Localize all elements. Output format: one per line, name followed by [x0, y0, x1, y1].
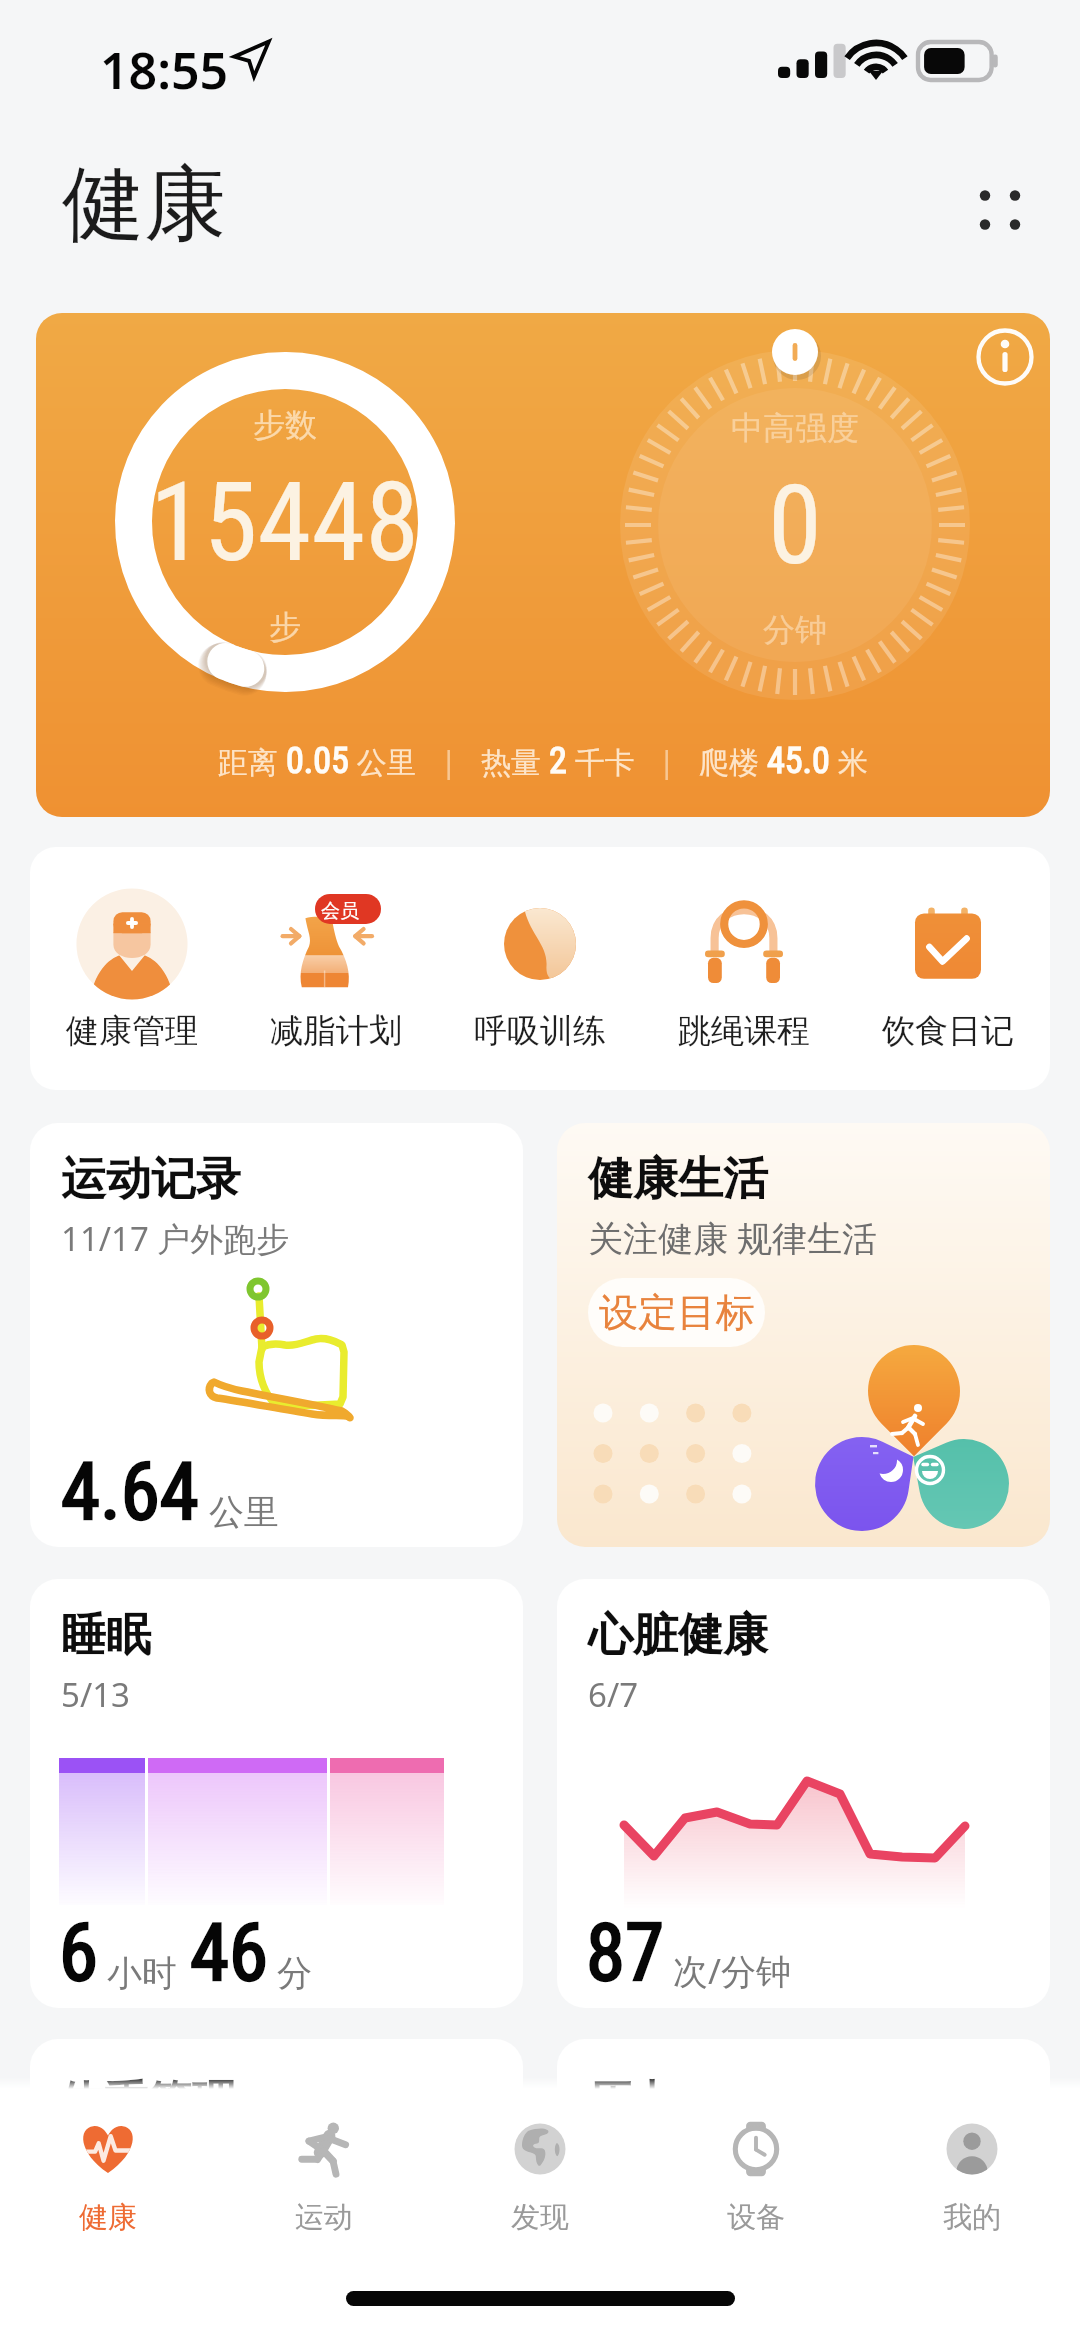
- staticText: 11/17 户外跑步: [61, 1216, 290, 1261]
- staticText: 6: [59, 1907, 98, 2000]
- staticText: 次/分钟: [673, 1947, 792, 1995]
- staticText: 分: [277, 1951, 312, 1995]
- button[interactable]: 发现: [432, 2089, 648, 2250]
- staticText: 分钟: [763, 610, 827, 650]
- staticText: 发现: [511, 2199, 569, 2236]
- staticText: 18:55: [100, 36, 229, 104]
- staticText: 2: [549, 740, 567, 782]
- staticText: 会员: [321, 899, 359, 923]
- staticText: 健康: [79, 2199, 137, 2236]
- staticText: 睡眠: [61, 1607, 151, 1664]
- staticText: 45.0: [767, 740, 830, 782]
- staticText: 爬楼: [699, 741, 767, 782]
- staticText: 15448: [150, 459, 420, 587]
- button[interactable]: 饮食日记: [846, 847, 1050, 1090]
- staticText: 距离: [218, 741, 286, 782]
- button[interactable]: 会员: [234, 847, 438, 1090]
- staticText: 0: [768, 462, 822, 590]
- button[interactable]: Info: [978, 330, 1032, 384]
- staticText: 跳绳课程: [678, 1010, 810, 1052]
- button[interactable]: 设定目标: [588, 1278, 765, 1347]
- staticText: 步数: [253, 405, 317, 445]
- staticText: 饮食日记: [882, 1010, 1014, 1052]
- staticText: 46: [190, 1907, 268, 2000]
- staticText: 步: [269, 607, 301, 647]
- staticText: 中高强度: [731, 408, 859, 448]
- button[interactable]: 睡眠: [30, 1579, 523, 2008]
- staticText: 健康生活: [588, 1151, 768, 1208]
- button[interactable]: 呼吸训练: [438, 847, 642, 1090]
- staticText: 运动: [295, 2199, 353, 2236]
- button[interactable]: 运动: [216, 2089, 432, 2250]
- button[interactable]: 健康: [0, 2089, 216, 2250]
- staticText: 热量: [481, 741, 549, 782]
- staticText: 呼吸训练: [474, 1010, 606, 1052]
- staticText: 健康管理: [66, 1010, 198, 1052]
- staticText: 0.05: [286, 740, 349, 782]
- staticText: 4.64: [61, 1446, 199, 1539]
- button[interactable]: 健康管理: [30, 847, 234, 1090]
- staticText: 心脏健康: [588, 1607, 768, 1664]
- staticText: 关注健康 规律生活: [588, 1214, 878, 1262]
- button[interactable]: 我的: [864, 2089, 1080, 2250]
- button[interactable]: 跳绳课程: [642, 847, 846, 1090]
- staticText: |: [417, 741, 481, 782]
- staticText: 我的: [943, 2199, 1001, 2236]
- button[interactable]: 心脏健康: [557, 1579, 1050, 2008]
- staticText: 公里: [349, 741, 417, 782]
- staticText: 健康: [62, 153, 226, 256]
- staticText: 5/13: [61, 1672, 130, 1717]
- staticText: 千卡: [567, 741, 635, 782]
- staticText: 6/7: [588, 1672, 639, 1717]
- button[interactable]: 运动记录: [30, 1123, 523, 1547]
- button[interactable]: 设备: [648, 2089, 864, 2250]
- staticText: 减脂计划: [270, 1010, 402, 1052]
- staticText: 设定目标: [599, 1288, 755, 1337]
- staticText: 运动记录: [61, 1151, 241, 1208]
- staticText: 小时: [107, 1951, 177, 1995]
- button[interactable]: Info: [36, 313, 1050, 817]
- button[interactable]: 健康生活: [557, 1123, 1050, 1547]
- staticText: 设备: [727, 2199, 785, 2236]
- staticText: 体重管理: [60, 2075, 236, 2130]
- button[interactable]: More options: [955, 165, 1045, 255]
- staticText: 米: [830, 741, 868, 782]
- staticText: 87: [586, 1907, 664, 2000]
- staticText: 压力: [587, 2075, 675, 2130]
- staticText: 公里: [209, 1490, 279, 1534]
- staticText: |: [635, 741, 699, 782]
